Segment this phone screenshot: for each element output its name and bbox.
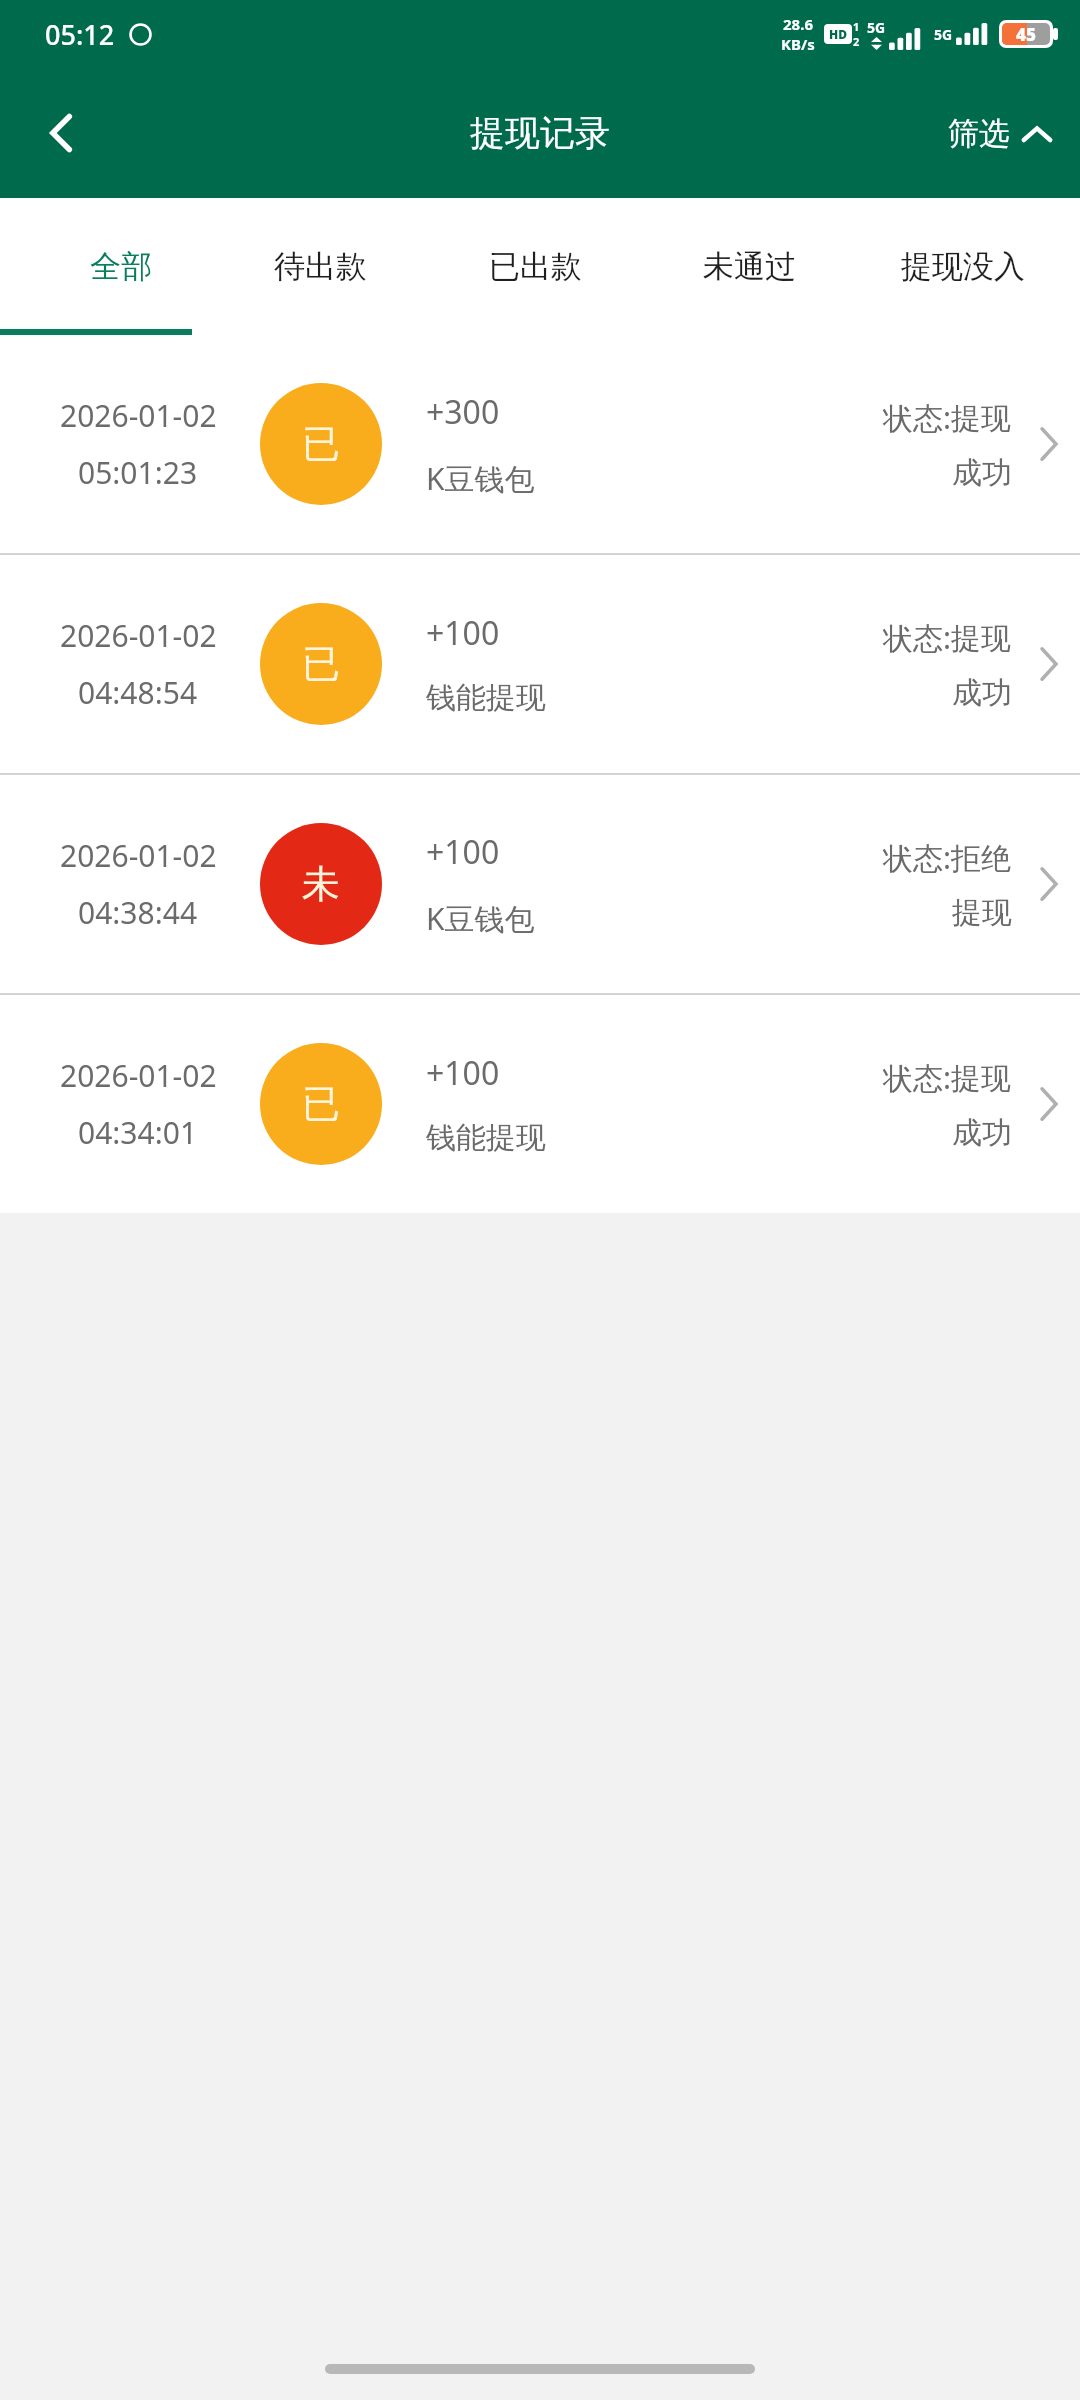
staticText: 未通过 [703,247,796,286]
staticText: 提现 [952,894,1012,932]
button[interactable]: Back [20,91,104,175]
staticText: HD [829,26,848,42]
staticText: +100 [426,611,500,655]
staticText: 状态:拒绝 [883,837,1012,878]
staticText: K豆钱包 [426,458,535,499]
staticText: 成功 [952,1114,1012,1152]
staticText: 05:01:23 [78,452,198,493]
button[interactable]: 待出款 [213,198,428,335]
staticText: 全部 [90,247,152,286]
staticText: 2026-01-02 [60,835,217,876]
staticText: 成功 [952,454,1012,492]
staticText: +100 [426,1051,500,1095]
staticText: 已 [302,640,340,688]
staticText: 2026-01-02 [60,615,217,656]
staticText: K豆钱包 [426,898,535,939]
staticText: +300 [426,390,500,434]
staticText: 5G [867,18,886,37]
staticText: 钱能提现 [426,1119,546,1157]
staticText: 成功 [952,674,1012,712]
staticText: 已 [302,420,340,468]
staticText: 待出款 [274,247,367,286]
staticText: 04:48:54 [78,672,198,713]
staticText: 状态:提现 [883,397,1012,438]
staticText: 5G [934,25,953,44]
staticText: 2026-01-02 [60,1055,217,1096]
staticText: 提现没入 [901,247,1025,286]
button[interactable]: 已出款 [428,198,642,335]
staticText: 05:12 [45,16,115,53]
staticText: 状态:提现 [883,1057,1012,1098]
staticText: 1 [853,19,860,34]
staticText: 提现记录 [470,111,610,155]
staticText: 已出款 [489,247,582,286]
staticText: +100 [426,830,500,874]
staticText: 2 [853,34,860,49]
staticText: 04:34:01 [78,1112,198,1153]
button[interactable]: 提现没入 [856,198,1070,335]
staticText: KB/s [781,34,815,54]
staticText: 28.6 [783,14,813,34]
button[interactable]: 2026-01-02 [0,775,1080,993]
staticText: 已 [302,1080,340,1128]
staticText: 04:38:44 [78,892,198,933]
staticText: 2026-01-02 [60,395,217,436]
button[interactable]: 筛选 [942,100,1058,167]
button[interactable]: 2026-01-02 [0,555,1080,773]
button[interactable]: 全部 [28,198,213,335]
button[interactable]: 2026-01-02 [0,995,1080,1213]
staticText: 筛选 [948,114,1010,153]
button[interactable]: 未通过 [642,198,856,335]
staticText: 状态:提现 [883,617,1012,658]
staticText: 45 [1016,23,1036,45]
button[interactable]: 2026-01-02 [0,335,1080,553]
staticText: 未 [302,860,340,908]
staticText: 钱能提现 [426,679,546,717]
